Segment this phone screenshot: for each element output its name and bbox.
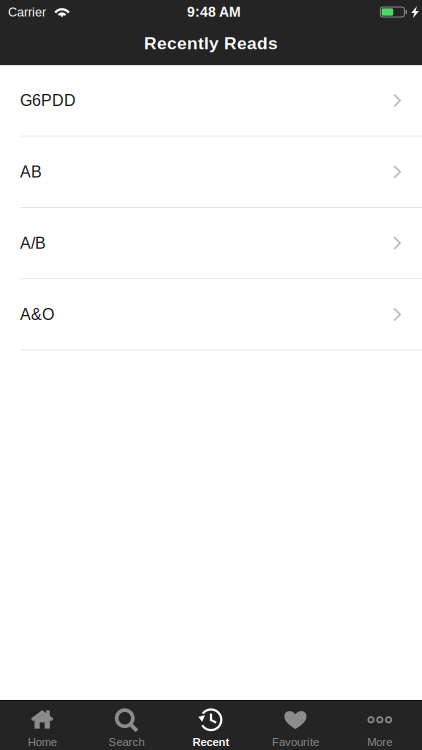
staticText: Recent (192, 736, 229, 748)
staticText: A/B (20, 234, 46, 252)
button[interactable]: Recent (169, 700, 253, 750)
staticText: G6PDD (20, 92, 76, 109)
staticText: A&O (20, 305, 54, 323)
button[interactable]: Home (0, 700, 84, 750)
button[interactable]: A/B (0, 208, 422, 279)
button[interactable]: Favourite (253, 700, 338, 750)
staticText: AB (20, 163, 42, 181)
button[interactable]: G6PDD (0, 65, 422, 137)
staticText: More (367, 736, 392, 748)
button[interactable]: AB (0, 137, 422, 208)
button[interactable]: More (338, 700, 422, 750)
staticText: Home (28, 736, 57, 748)
button[interactable]: Search (84, 700, 169, 750)
staticText: 9:48 AM (187, 4, 241, 20)
staticText: Search (109, 736, 145, 748)
staticText: Recently Reads (144, 33, 278, 53)
staticText: Favourite (272, 736, 319, 748)
staticText: Carrier (8, 5, 46, 19)
button[interactable]: A&O (0, 279, 422, 351)
